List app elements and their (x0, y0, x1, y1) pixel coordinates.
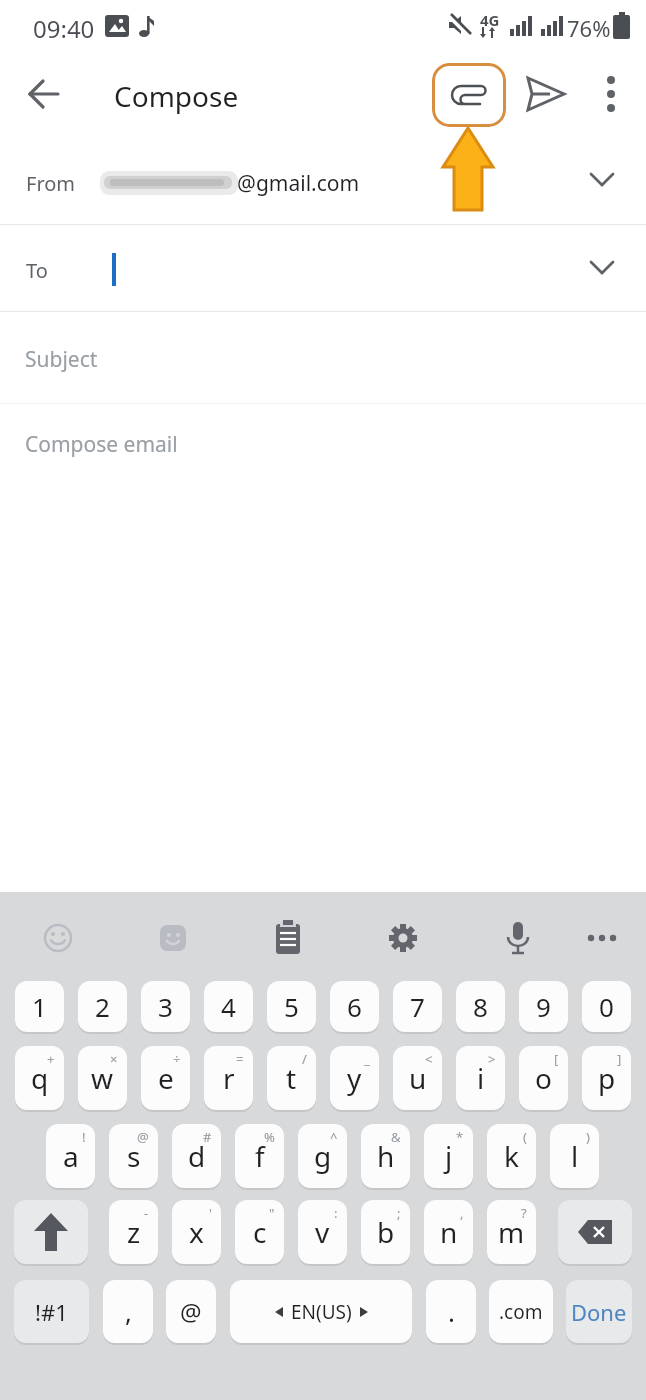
button[interactable]: !#1 (14, 1280, 89, 1343)
button[interactable] (432, 63, 506, 127)
staticText: To (26, 257, 48, 284)
staticText: @ (137, 1128, 149, 1146)
button[interactable]: t (267, 1046, 316, 1110)
button[interactable]: 7 (393, 981, 442, 1032)
staticText: # (203, 1128, 212, 1146)
staticText: ? (521, 1204, 527, 1222)
button[interactable] (266, 916, 310, 960)
button[interactable]: w (78, 1046, 127, 1110)
button[interactable]: k (487, 1124, 536, 1188)
button[interactable]: 5 (267, 981, 316, 1032)
button[interactable]: b (361, 1200, 410, 1264)
button[interactable]: 4 (204, 981, 253, 1032)
staticText: 7 (410, 989, 425, 1024)
button[interactable] (590, 68, 642, 120)
staticText: × (110, 1050, 118, 1068)
button[interactable]: m (487, 1200, 536, 1264)
staticText: 09:40 (33, 12, 95, 45)
staticText: o (535, 1059, 552, 1097)
button[interactable]: @ (166, 1280, 216, 1343)
staticText: EN(US) (291, 1299, 352, 1325)
button[interactable]: j (424, 1124, 473, 1188)
staticText: 4G (480, 10, 500, 30)
button[interactable]: c (235, 1200, 284, 1264)
button[interactable]: d (172, 1124, 221, 1188)
button[interactable] (580, 916, 624, 960)
button[interactable] (151, 916, 195, 960)
button[interactable]: q (15, 1046, 64, 1110)
staticText: ! (82, 1128, 86, 1146)
staticText: 76% (567, 13, 611, 43)
button[interactable]: o (519, 1046, 568, 1110)
staticText: = (236, 1050, 244, 1068)
staticText: j (445, 1137, 453, 1175)
button[interactable]: v (298, 1200, 347, 1264)
staticText: l (571, 1137, 579, 1175)
staticText: i (477, 1059, 485, 1097)
staticText: t (286, 1059, 297, 1097)
button[interactable]: y (330, 1046, 379, 1110)
staticText: > (488, 1050, 496, 1068)
button[interactable]: Subject (0, 312, 646, 403)
button[interactable] (558, 1200, 632, 1264)
button[interactable]: s (109, 1124, 158, 1188)
button[interactable]: e (141, 1046, 190, 1110)
staticText: Compose (114, 77, 239, 115)
button[interactable]: .com (489, 1280, 553, 1343)
staticText: Compose email (25, 430, 178, 459)
button[interactable]: f (235, 1124, 284, 1188)
staticText: x (189, 1213, 204, 1251)
button[interactable] (36, 916, 80, 960)
staticText: z (127, 1213, 141, 1251)
button[interactable] (16, 70, 68, 118)
button[interactable]: x (172, 1200, 221, 1264)
button[interactable]: 8 (456, 981, 505, 1032)
button[interactable] (580, 248, 624, 292)
button[interactable]: l (550, 1124, 599, 1188)
button[interactable]: 2 (78, 981, 127, 1032)
staticText: r (223, 1059, 235, 1097)
button[interactable]: EN(US) (230, 1280, 412, 1343)
button[interactable]: u (393, 1046, 442, 1110)
button[interactable] (496, 916, 540, 960)
button[interactable] (520, 68, 572, 120)
staticText: , (460, 1204, 464, 1222)
staticText: d (188, 1137, 206, 1175)
staticText: a (63, 1137, 79, 1175)
button[interactable]: p (582, 1046, 631, 1110)
staticText: p (598, 1059, 616, 1097)
staticText: - (144, 1204, 149, 1222)
staticText: s (127, 1137, 141, 1175)
staticText: e (158, 1059, 174, 1097)
staticText: 0 (599, 989, 614, 1024)
button[interactable] (14, 1200, 88, 1264)
staticText: 3 (158, 989, 173, 1024)
button[interactable]: 6 (330, 981, 379, 1032)
staticText: ( (523, 1128, 527, 1146)
button[interactable]: . (426, 1280, 476, 1343)
button[interactable]: h (361, 1124, 410, 1188)
button[interactable]: Compose email (0, 404, 646, 494)
button[interactable]: g (298, 1124, 347, 1188)
staticText: f (255, 1137, 265, 1175)
button[interactable]: 3 (141, 981, 190, 1032)
button[interactable]: 0 (582, 981, 631, 1032)
staticText: / (302, 1050, 307, 1068)
staticText: + (47, 1050, 55, 1068)
staticText: g (314, 1137, 332, 1175)
button[interactable] (381, 916, 425, 960)
staticText: n (440, 1213, 458, 1251)
button[interactable]: 9 (519, 981, 568, 1032)
staticText: 2 (95, 989, 110, 1024)
button[interactable] (580, 160, 624, 204)
staticText: .com (499, 1299, 543, 1325)
staticText: y (347, 1059, 362, 1097)
button[interactable]: z (109, 1200, 158, 1264)
button[interactable]: a (46, 1124, 95, 1188)
button[interactable]: r (204, 1046, 253, 1110)
button[interactable]: i (456, 1046, 505, 1110)
button[interactable]: Done (566, 1280, 632, 1343)
button[interactable]: n (424, 1200, 473, 1264)
button[interactable]: 1 (15, 981, 64, 1032)
button[interactable]: , (103, 1280, 153, 1343)
